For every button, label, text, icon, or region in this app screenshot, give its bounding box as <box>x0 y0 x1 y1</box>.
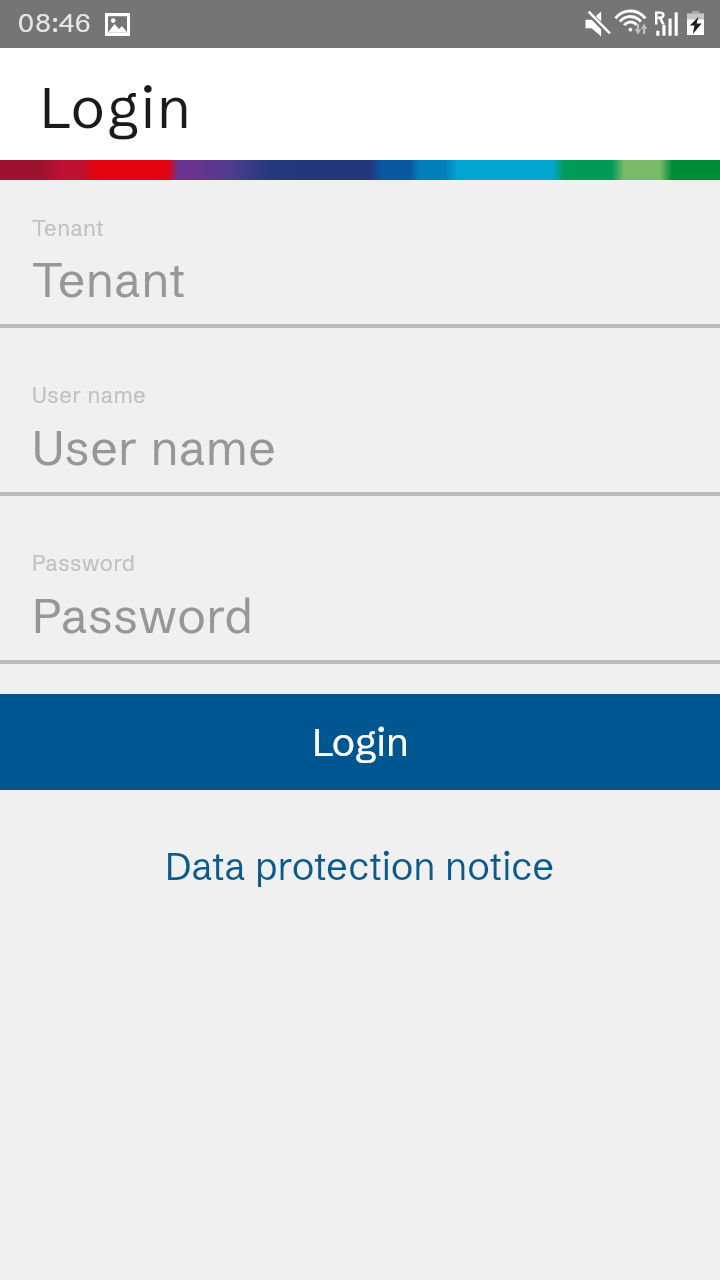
staticText: Login <box>312 718 409 766</box>
staticText: Tenant <box>32 215 104 242</box>
button[interactable]: User name <box>0 328 720 496</box>
staticText: Password <box>32 586 254 645</box>
staticText: Tenant <box>32 250 186 309</box>
button[interactable]: Tenant <box>0 180 720 328</box>
other: Sound off <box>585 11 611 37</box>
staticText: Login <box>40 72 193 142</box>
staticText: User name <box>32 382 147 409</box>
staticText: Password <box>32 550 136 577</box>
staticText: 08:46 <box>18 7 92 39</box>
button[interactable]: Login <box>0 694 720 790</box>
button[interactable]: Password <box>0 496 720 664</box>
staticText: Data protection notice <box>165 843 555 890</box>
staticText: R <box>654 7 665 28</box>
staticText: User name <box>32 418 277 477</box>
button[interactable]: Data protection notice <box>0 843 720 890</box>
